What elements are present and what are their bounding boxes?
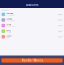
button[interactable]: Credit bbox=[0, 23, 64, 28]
staticText: $2,430 bbox=[57, 13, 62, 15]
staticText: •••• 4821 bbox=[6, 14, 14, 16]
staticText: Portfolio bbox=[6, 31, 11, 33]
staticText: $1,204 bbox=[57, 36, 62, 38]
staticText: •••• 9043 bbox=[6, 20, 14, 22]
staticText: Auto bbox=[6, 37, 9, 39]
staticText: $5,900 bbox=[57, 30, 62, 32]
staticText: Accounts bbox=[26, 3, 38, 7]
button[interactable]: Loans bbox=[0, 34, 64, 40]
staticText: ACCOUNTS bbox=[2, 9, 10, 11]
staticText: Checking bbox=[6, 13, 13, 14]
staticText: Credit bbox=[6, 24, 11, 26]
button[interactable]: Invest bbox=[0, 28, 64, 34]
button[interactable]: Savings bbox=[0, 17, 64, 23]
staticText: •••• 1187 bbox=[6, 26, 14, 27]
staticText: Invest bbox=[6, 29, 11, 31]
staticText: Loans bbox=[6, 35, 11, 37]
staticText: Savings bbox=[6, 18, 12, 20]
staticText: Transfer Money bbox=[21, 59, 42, 62]
button[interactable]: Checking bbox=[0, 12, 64, 17]
button[interactable]: Transfer Money bbox=[1, 58, 63, 63]
staticText: $412 bbox=[58, 25, 62, 26]
staticText: $8,120 bbox=[57, 19, 62, 21]
